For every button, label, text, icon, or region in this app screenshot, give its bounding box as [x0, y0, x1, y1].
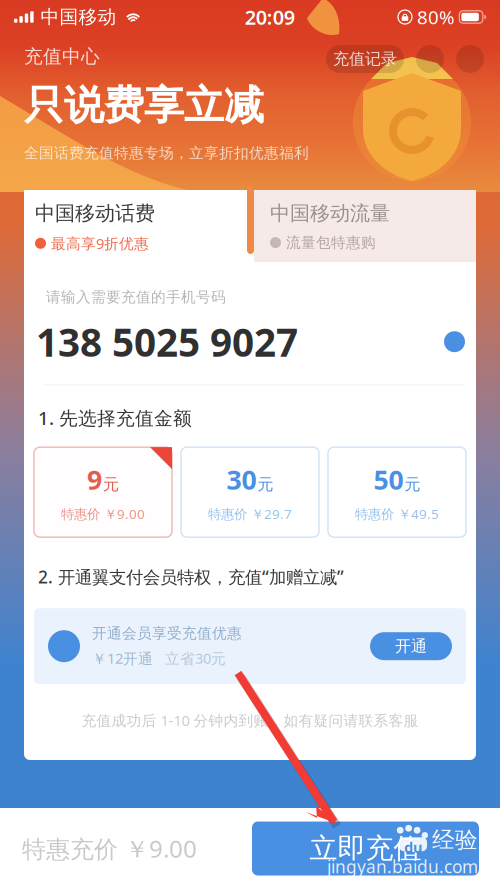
- button[interactable]: 30: [181, 447, 319, 537]
- button[interactable]: 充值记录: [326, 45, 404, 73]
- button[interactable]: 9: [34, 447, 172, 537]
- button[interactable]: Choose contact: [444, 331, 465, 352]
- staticText: 最高享9折优惠: [51, 234, 149, 253]
- staticText: 元: [103, 474, 119, 494]
- button[interactable]: 开通: [370, 632, 452, 660]
- staticText: du: [404, 837, 423, 857]
- staticText: 特惠价 ￥49.5: [355, 505, 439, 523]
- staticText: 只说费享立减: [24, 81, 264, 130]
- staticText: 全国话费充值特惠专场，立享折扣优惠福利: [24, 144, 309, 162]
- staticText: 中国移动流量: [270, 201, 390, 226]
- staticText: 充值中心: [24, 45, 100, 68]
- staticText: 30: [226, 462, 256, 497]
- button[interactable]: 立即充值: [252, 821, 479, 875]
- staticText: 中国移动: [41, 5, 117, 28]
- staticText: 立即充值: [309, 831, 421, 866]
- staticText: 1. 先选择充值金额: [38, 405, 192, 430]
- button[interactable]: 中国移动流量: [254, 190, 476, 262]
- staticText: 经验: [432, 826, 478, 854]
- staticText: jingyan.baidu.com: [327, 855, 478, 878]
- staticText: 2. 开通翼支付会员特权，充值“加赠立减”: [38, 565, 344, 588]
- staticText: 充值成功后 1-10 分钟内到账，如有疑问请联系客服: [81, 710, 418, 730]
- staticText: ￥12开通: [92, 648, 153, 668]
- staticText: 特惠价 ￥29.7: [208, 505, 292, 523]
- button[interactable]: Customer service: [416, 45, 444, 73]
- staticText: 中国移动话费: [35, 201, 155, 226]
- staticText: 开通: [395, 636, 427, 656]
- staticText: 特惠充价 ￥9.00: [22, 833, 197, 864]
- button[interactable]: Account: [456, 45, 484, 73]
- staticText: 9: [87, 462, 102, 497]
- staticText: 20:09: [245, 4, 295, 30]
- staticText: 元: [257, 474, 273, 494]
- staticText: 立省30元: [165, 648, 226, 668]
- button[interactable]: 中国移动话费: [24, 190, 247, 262]
- staticText: 充值记录: [333, 49, 397, 69]
- staticText: 请输入需要充值的手机号码: [46, 288, 226, 306]
- staticText: 流量包特惠购: [286, 234, 376, 252]
- staticText: 开通会员享受充值优惠: [92, 624, 242, 642]
- staticText: 元: [404, 474, 420, 494]
- staticText: 50: [373, 462, 403, 497]
- staticText: 138 5025 9027: [36, 316, 298, 367]
- staticText: 80%: [417, 5, 455, 29]
- button[interactable]: 50: [328, 447, 466, 537]
- staticText: 特惠价 ￥9.00: [61, 505, 145, 523]
